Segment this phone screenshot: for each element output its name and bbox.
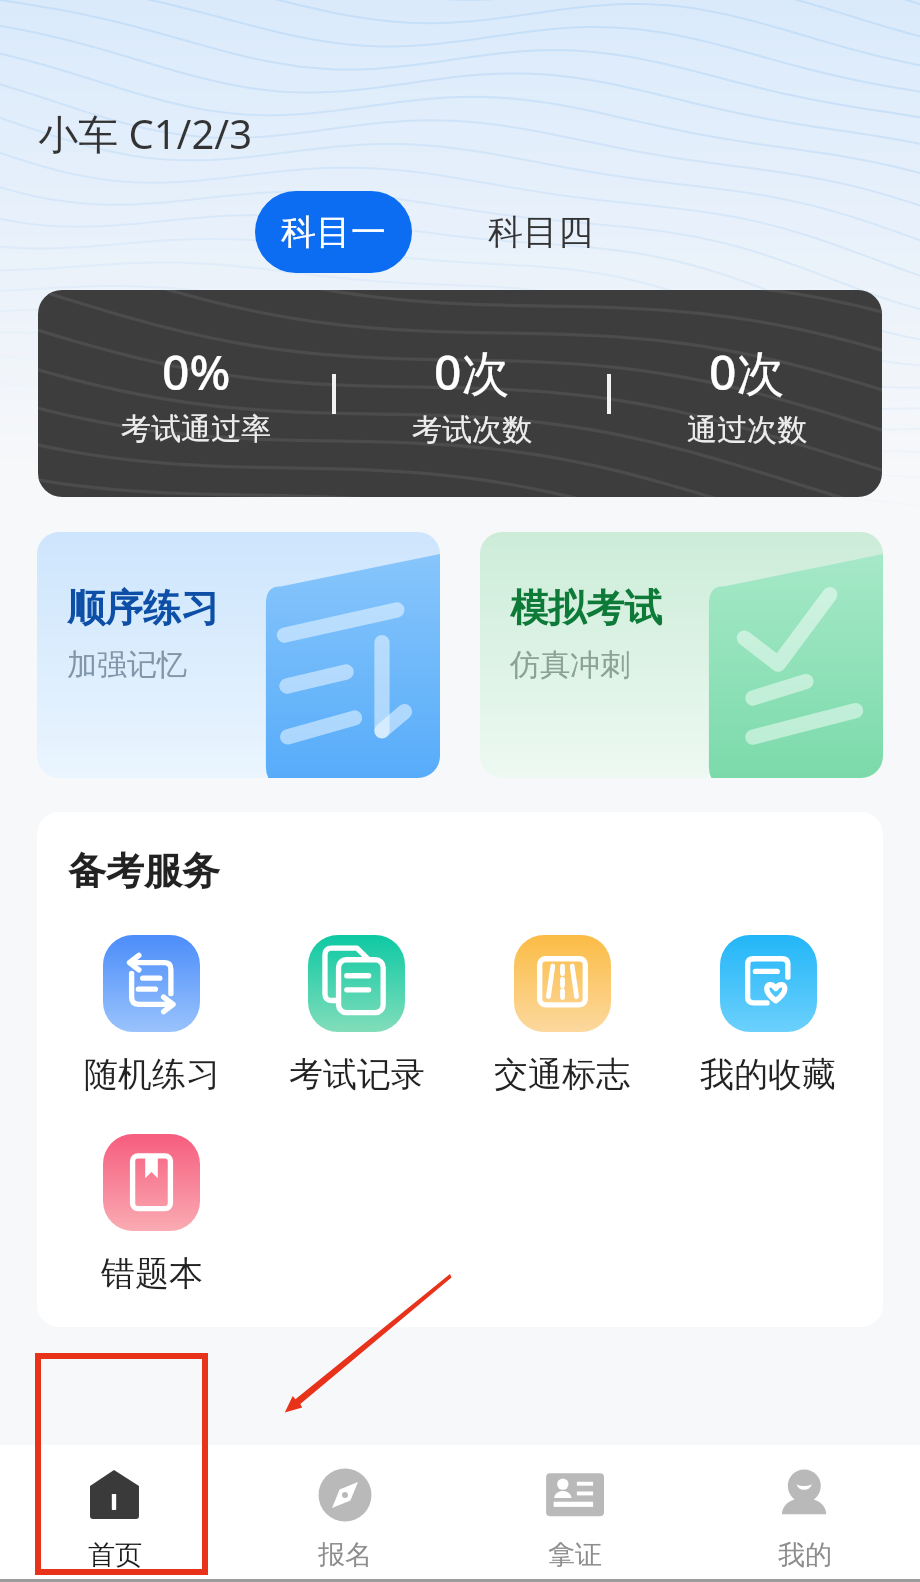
button[interactable]: Home	[0, 1445, 230, 1572]
other: Sign up	[318, 1468, 372, 1522]
other: Get license	[548, 1468, 602, 1522]
button[interactable]: 小车 C1/2/3	[38, 106, 253, 161]
staticText: 备考服务	[68, 847, 220, 895]
staticText: 科目一	[281, 210, 386, 254]
staticText: 考试通过率	[121, 410, 271, 448]
button[interactable]: 随机练习	[49, 935, 254, 1096]
staticText: 错题本	[101, 1252, 203, 1295]
staticText: 0次	[434, 339, 510, 405]
staticText: 科目四	[488, 210, 593, 254]
staticText: 随机练习	[84, 1053, 220, 1096]
staticText: 通过次数	[687, 411, 807, 449]
staticText: 0次	[709, 339, 785, 405]
button[interactable]: 我的收藏	[665, 935, 871, 1096]
staticText: 首页	[88, 1538, 142, 1572]
staticText: 加强记忆	[67, 646, 187, 684]
button[interactable]: 错题本	[49, 1134, 254, 1295]
staticText: 顺序练习	[67, 584, 219, 632]
button[interactable]: 交通标志	[459, 935, 665, 1096]
staticText: 报名	[318, 1538, 372, 1572]
button[interactable]: 0%	[38, 290, 882, 497]
button[interactable]: 科目四	[462, 191, 619, 273]
staticText: 考试次数	[412, 411, 532, 449]
staticText: 我的收藏	[700, 1053, 836, 1096]
button[interactable]: 顺序练习	[37, 532, 440, 778]
staticText: 0%	[162, 339, 231, 404]
staticText: 我的	[778, 1538, 832, 1572]
staticText: 拿证	[548, 1538, 602, 1572]
button[interactable]: Profile	[690, 1445, 920, 1572]
other: Profile	[778, 1468, 832, 1522]
button[interactable]: 模拟考试	[480, 532, 883, 778]
button[interactable]: 考试记录	[254, 935, 459, 1096]
button[interactable]: Get license	[460, 1445, 690, 1572]
staticText: 仿真冲刺	[510, 646, 630, 684]
staticText: 模拟考试	[510, 584, 662, 632]
staticText: 考试记录	[289, 1053, 425, 1096]
button[interactable]: 科目一	[255, 191, 412, 273]
other: Home	[88, 1468, 142, 1522]
staticText: 交通标志	[494, 1053, 630, 1096]
button[interactable]: Sign up	[230, 1445, 460, 1572]
